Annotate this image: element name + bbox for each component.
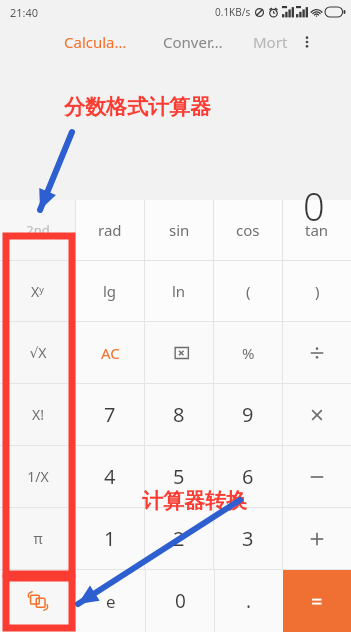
button[interactable]: More options xyxy=(294,29,320,55)
staticText: lg xyxy=(103,281,117,301)
button[interactable]: 2nd xyxy=(0,200,75,260)
staticText: 3 xyxy=(242,525,254,552)
staticText: 0.1KB/s xyxy=(215,5,251,19)
button[interactable]: √X xyxy=(0,322,75,383)
staticText: tan xyxy=(305,220,329,240)
staticText: 2nd xyxy=(26,221,50,239)
button[interactable]: rad xyxy=(76,200,144,260)
button[interactable]: 8 xyxy=(145,384,213,445)
staticText: % xyxy=(242,343,255,363)
staticText: 5 xyxy=(173,463,185,490)
button[interactable]: . xyxy=(215,570,283,632)
staticText: ) xyxy=(315,281,320,301)
staticText: π xyxy=(33,529,43,548)
button[interactable]: 0 xyxy=(146,570,214,632)
button[interactable]: ) xyxy=(283,261,351,321)
button[interactable]: e xyxy=(76,570,145,632)
staticText: 1 xyxy=(104,525,116,552)
button[interactable]: 5 xyxy=(145,446,213,507)
button[interactable]: ( xyxy=(214,261,282,321)
staticText: X! xyxy=(32,405,44,424)
staticText: 2 xyxy=(173,525,185,552)
button[interactable]: X! xyxy=(0,384,75,445)
button[interactable]: 1/X xyxy=(0,446,75,507)
button[interactable]: Conver… xyxy=(159,28,227,56)
button[interactable]: cos xyxy=(214,200,282,260)
button[interactable]: Minus xyxy=(283,446,351,507)
button[interactable]: 6 xyxy=(214,446,282,507)
staticText: ln xyxy=(172,281,186,301)
button[interactable]: Mort xyxy=(251,28,290,56)
staticText: Xʸ xyxy=(31,282,44,301)
staticText: 7 xyxy=(104,401,116,428)
button[interactable]: 7 xyxy=(76,384,144,445)
staticText: 1/X xyxy=(27,467,49,486)
button[interactable]: ln xyxy=(145,261,213,321)
staticText: = xyxy=(311,588,323,615)
staticText: 0 xyxy=(303,180,325,232)
button[interactable]: sin xyxy=(145,200,213,260)
staticText: √X xyxy=(29,343,47,362)
staticText: Mort xyxy=(253,32,288,52)
staticText: 4 xyxy=(104,463,116,490)
button[interactable]: 4 xyxy=(76,446,144,507)
button[interactable]: 1 xyxy=(76,508,144,569)
button[interactable]: Divide xyxy=(283,322,351,383)
button[interactable]: Backspace xyxy=(145,322,213,383)
button[interactable]: Plus xyxy=(283,508,351,569)
staticText: sin xyxy=(169,220,190,240)
staticText: e xyxy=(106,590,116,613)
button[interactable]: Calcula… xyxy=(60,28,131,56)
staticText: ( xyxy=(246,281,251,301)
button[interactable]: % xyxy=(214,322,282,383)
button[interactable]: Fraction format xyxy=(0,570,75,632)
button[interactable]: Xʸ xyxy=(0,261,75,321)
button[interactable]: tan xyxy=(283,200,351,260)
staticText: cos xyxy=(236,220,260,240)
staticText: Calcula… xyxy=(64,32,127,52)
button[interactable]: Multiply xyxy=(283,384,351,445)
button[interactable]: lg xyxy=(76,261,144,321)
staticText: Conver… xyxy=(163,32,223,52)
button[interactable]: Equals xyxy=(283,570,351,632)
button[interactable]: 3 xyxy=(214,508,282,569)
button[interactable]: 2 xyxy=(145,508,213,569)
staticText: . xyxy=(246,588,252,614)
staticText: 计算器转换 xyxy=(142,488,247,514)
button[interactable]: π xyxy=(0,508,75,569)
staticText: 9 xyxy=(242,401,254,428)
staticText: rad xyxy=(98,220,122,240)
button[interactable]: AC xyxy=(76,322,144,383)
staticText: 8 xyxy=(173,401,185,428)
staticText: 分数格式计算器 xyxy=(64,94,211,120)
staticText: AC xyxy=(101,343,120,363)
staticText: 21:40 xyxy=(10,5,39,20)
button[interactable]: 9 xyxy=(214,384,282,445)
staticText: 6 xyxy=(242,463,254,490)
staticText: 0 xyxy=(175,588,186,614)
